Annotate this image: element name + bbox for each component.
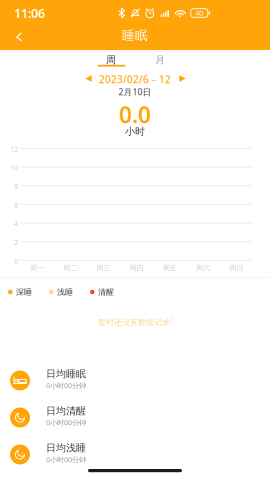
staticText: 周: [106, 53, 116, 66]
staticText: 浅睡: [57, 287, 73, 297]
staticText: 暂时还没有数据记录!: [98, 316, 172, 327]
button[interactable]: Next week: [174, 71, 191, 86]
staticText: 月: [155, 53, 165, 66]
staticText: 日均睡眠: [46, 367, 86, 380]
staticText: 日均浅睡: [46, 441, 86, 454]
staticText: 周二: [63, 263, 77, 273]
staticText: 0小时00分钟: [46, 380, 86, 390]
button[interactable]: 周: [97, 51, 125, 71]
staticText: 6: [14, 200, 18, 210]
staticText: 12: [10, 144, 18, 154]
staticText: 睡眠: [122, 27, 148, 43]
staticText: 0: [14, 256, 18, 266]
staticText: 2: [14, 237, 18, 247]
staticText: 清醒: [98, 287, 114, 297]
staticText: 小时: [125, 125, 145, 138]
button[interactable]: Previous week: [80, 71, 97, 86]
staticText: 0.0: [119, 99, 151, 130]
staticText: 0小时00分钟: [46, 417, 86, 427]
staticText: 10: [10, 162, 18, 172]
button[interactable]: 日均浅睡: [0, 436, 270, 473]
staticText: 2月10日: [118, 86, 151, 98]
staticText: 周日: [229, 263, 243, 273]
staticText: 周一: [30, 263, 44, 273]
staticText: 周六: [196, 263, 210, 273]
staticText: 0小时00分钟: [46, 454, 86, 464]
staticText: 周四: [129, 263, 143, 273]
button[interactable]: 月: [146, 51, 174, 71]
staticText: 周五: [163, 263, 177, 273]
button[interactable]: 日均清醒: [0, 399, 270, 436]
staticText: 深睡: [16, 287, 32, 297]
button[interactable]: Back: [2, 25, 36, 49]
staticText: 11:06: [14, 4, 45, 22]
staticText: 日均清醒: [46, 404, 86, 417]
staticText: 周三: [96, 263, 110, 273]
staticText: 2023/02/6－12: [99, 72, 171, 86]
button[interactable]: 日均睡眠: [0, 362, 270, 399]
staticText: 40: [195, 8, 203, 18]
staticText: 4: [14, 218, 18, 228]
staticText: 8: [14, 181, 18, 191]
